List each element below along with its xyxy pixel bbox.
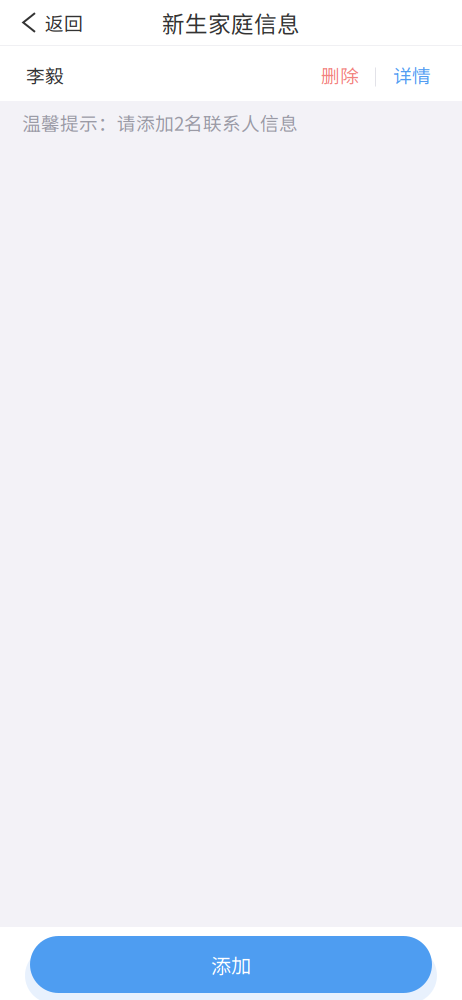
staticText: 温馨提示：请添加2名联系人信息 <box>22 109 298 136</box>
button[interactable]: 添加 <box>30 936 432 993</box>
staticText: 添加 <box>211 950 251 979</box>
button[interactable]: 删除 <box>305 53 375 97</box>
staticText: 删除 <box>321 61 359 88</box>
staticText: 详情 <box>393 61 431 88</box>
staticText: 新生家庭信息 <box>162 6 300 39</box>
button[interactable]: 返回 <box>0 0 97 44</box>
staticText: 返回 <box>45 9 83 36</box>
staticText: 李毅 <box>26 61 64 88</box>
button[interactable]: 详情 <box>376 53 448 97</box>
